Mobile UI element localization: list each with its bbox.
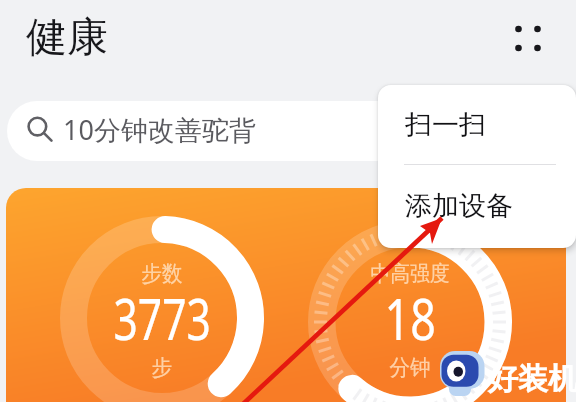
staticText: 步数 [141,260,182,288]
button[interactable]: 步数 [6,188,566,402]
staticText: 好装机 [488,360,576,398]
staticText: 18 [384,280,436,356]
staticText: 步 [152,354,172,382]
staticText: 分钟 [389,354,430,382]
staticText: 3773 [113,280,211,356]
staticText: 中高强度 [370,260,450,288]
button[interactable]: 10分钟改善驼背 [7,101,407,161]
staticText: 扫一扫 [405,108,486,142]
staticText: 10分钟改善驼背 [63,111,256,148]
staticText: 健康 [26,12,108,64]
staticText: 添加设备 [405,189,513,223]
button[interactable]: 扫一扫 [378,85,576,164]
button[interactable]: 添加设备 [378,165,576,247]
button[interactable]: More options [502,12,554,64]
